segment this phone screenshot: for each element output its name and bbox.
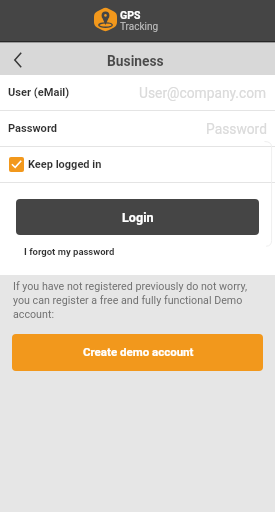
staticText: Business (107, 53, 164, 69)
staticText: User (eMail) (8, 86, 70, 99)
staticText: Tracking (120, 21, 159, 33)
button[interactable]: Password (0, 111, 275, 146)
button[interactable]: Back (1, 44, 35, 76)
button[interactable]: Keep logged in (0, 147, 275, 182)
staticText: Create demo account (83, 345, 194, 358)
staticText: I forgot my password (24, 246, 115, 257)
staticText: Password (8, 122, 58, 135)
staticText: User@company.com (139, 85, 267, 101)
button[interactable]: I forgot my password (24, 246, 115, 257)
staticText: Password (206, 121, 267, 137)
staticText: GPS (120, 9, 141, 21)
staticText: Keep logged in (28, 158, 102, 171)
button[interactable]: Login (16, 199, 259, 235)
button[interactable]: Create demo account (12, 334, 263, 371)
button[interactable]: User (eMail) (0, 75, 275, 110)
staticText: If you have not registered previously do… (13, 280, 262, 321)
staticText: Login (122, 210, 154, 225)
